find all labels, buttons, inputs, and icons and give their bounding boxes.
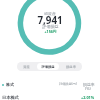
button[interactable]: 株式 [2, 82, 14, 87]
staticText: 資産 [23, 65, 30, 69]
staticText: 損益率 [66, 65, 76, 69]
button[interactable]: 資産 [18, 63, 35, 70]
staticText: +156円 [44, 29, 57, 34]
staticText: 株式 [6, 82, 14, 87]
staticText: +2.01% [81, 95, 95, 100]
staticText: 総資産 [44, 11, 56, 16]
staticText: 日本株式 [2, 95, 19, 100]
staticText: 評価損益 [41, 65, 55, 69]
staticText: 7,941 [37, 14, 63, 27]
button[interactable]: 評価損益 [37, 63, 59, 70]
button[interactable]: 日本株式 [0, 94, 100, 100]
staticText: (%) [85, 86, 91, 91]
staticText: 評価損益 [42, 24, 59, 29]
staticText: 評価損益(円) [59, 82, 77, 86]
staticText: 損益率 [83, 82, 95, 87]
button[interactable]: 損益率 [61, 63, 81, 70]
